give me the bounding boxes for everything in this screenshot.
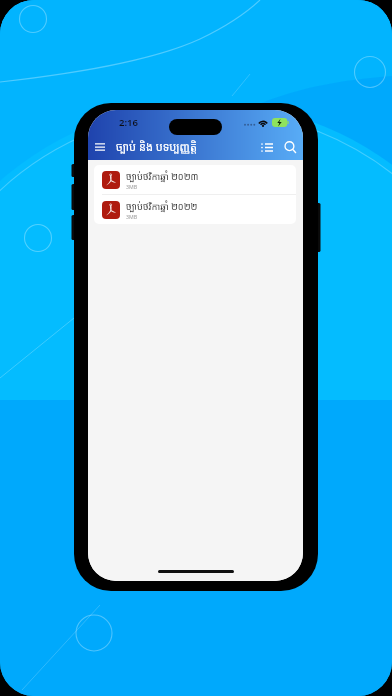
staticText: ច្បាប់ថវិកាឆ្នាំ ២០២៣ — [126, 170, 199, 183]
staticText: 3MB — [126, 183, 138, 190]
button[interactable]: Search — [281, 138, 299, 156]
button[interactable]: ច្បាប់ថវិកាឆ្នាំ ២០២៣ — [94, 165, 296, 194]
button[interactable]: Menu — [91, 138, 109, 156]
button[interactable]: ច្បាប់ថវិកាឆ្នាំ ២០២២ — [94, 195, 296, 224]
button[interactable]: List view — [258, 138, 276, 156]
staticText: ច្បាប់ថវិកាឆ្នាំ ២០២២ — [126, 200, 198, 213]
staticText: ច្បាប់ និង បទប្បញ្ញត្តិ — [116, 139, 198, 154]
staticText: 3MB — [126, 213, 138, 220]
staticText: 2:16 — [119, 116, 138, 129]
